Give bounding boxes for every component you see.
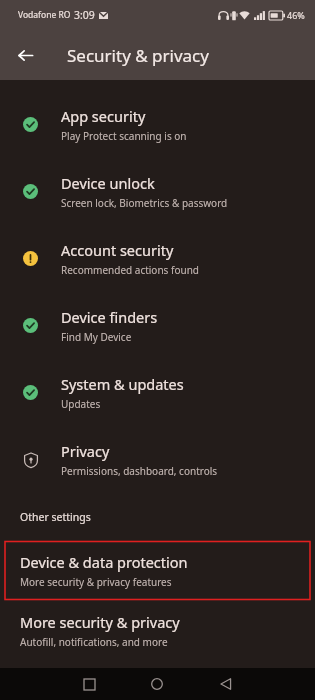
staticText: System & updates [61, 374, 184, 394]
staticText: Device unlock [61, 173, 155, 193]
staticText: Device finders [61, 307, 158, 327]
button[interactable]: More security & privacy [0, 600, 315, 660]
staticText: Permissions, dashboard, controls [61, 464, 218, 478]
staticText: Account security [61, 240, 174, 260]
button[interactable]: Device finders [0, 292, 315, 359]
staticText: Screen lock, Biometrics & password [61, 196, 228, 210]
button[interactable]: Recent apps [72, 668, 106, 700]
button[interactable]: System & updates [0, 359, 315, 426]
button[interactable]: App security [0, 91, 315, 158]
staticText: Find My Device [61, 330, 132, 344]
button[interactable]: Back [10, 40, 40, 70]
staticText: Device & data protection [20, 552, 188, 572]
button[interactable]: Device unlock [0, 158, 315, 225]
staticText: 3:09 [74, 8, 95, 22]
staticText: Autofill, notifications, and more [20, 635, 168, 649]
staticText: More security & privacy [20, 612, 180, 632]
button[interactable]: Privacy [0, 426, 315, 493]
staticText: App security [61, 106, 146, 126]
staticText: More security & privacy features [20, 575, 172, 589]
button[interactable]: Back [209, 668, 243, 700]
button[interactable]: Device & data protection [0, 541, 315, 600]
staticText: Security & privacy [67, 44, 209, 67]
staticText: Privacy [61, 441, 110, 461]
staticText: Other settings [20, 510, 91, 524]
button[interactable]: Account security [0, 225, 315, 292]
button[interactable]: Home [140, 668, 174, 700]
staticText: Play Protect scanning is on [61, 129, 187, 143]
staticText: Vodafone RO [18, 9, 71, 21]
staticText: 46% [287, 9, 305, 21]
staticText: Updates [61, 397, 101, 411]
staticText: Recommended actions found [61, 263, 199, 277]
